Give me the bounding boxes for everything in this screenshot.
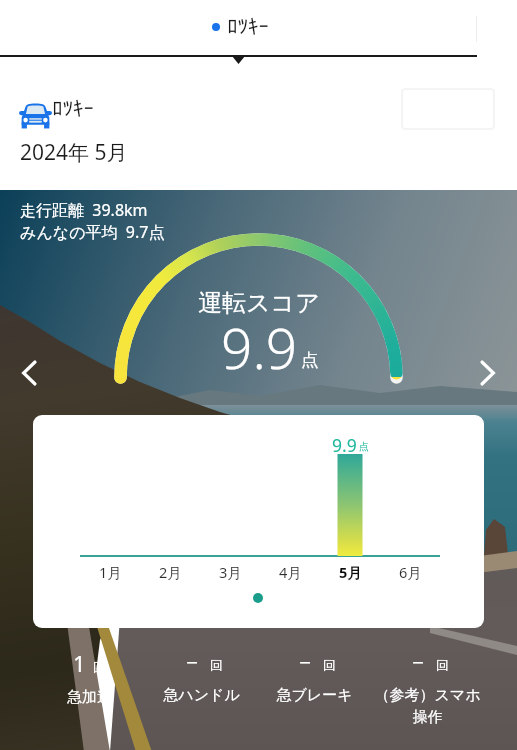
staticText: 9.9: [221, 310, 298, 385]
staticText: 6月: [399, 562, 422, 582]
staticText: －: [407, 648, 429, 676]
button[interactable]: Vehicle image: [401, 88, 495, 130]
staticText: 1: [73, 648, 86, 678]
button[interactable]: －: [145, 648, 258, 705]
button[interactable]: 1: [33, 648, 145, 707]
staticText: 2月: [159, 562, 182, 582]
staticText: 点: [359, 440, 369, 453]
staticText: 点: [301, 349, 319, 371]
staticText: （参考）スマホ操作: [371, 686, 484, 726]
button[interactable]: Next month: [471, 356, 505, 390]
staticText: 5月: [339, 562, 362, 582]
staticText: 4月: [279, 562, 302, 582]
staticText: ﾛﾂｷｰ: [227, 16, 269, 37]
button[interactable]: －: [371, 648, 484, 726]
staticText: 回: [323, 657, 336, 673]
button[interactable]: ﾛﾂｷｰ: [212, 16, 269, 37]
staticText: 急加速: [67, 688, 112, 707]
staticText: 回: [210, 657, 223, 673]
staticText: ﾛﾂｷｰ: [52, 98, 94, 119]
staticText: －: [294, 648, 316, 676]
button[interactable]: －: [258, 648, 371, 705]
staticText: －: [181, 648, 203, 676]
staticText: 2024年 5月: [20, 138, 128, 167]
staticText: 1月: [99, 562, 122, 582]
staticText: 3月: [219, 562, 242, 582]
staticText: 9.9: [332, 433, 357, 457]
button[interactable]: Previous month: [12, 356, 46, 390]
staticText: 回: [436, 657, 449, 673]
staticText: 回: [93, 659, 106, 675]
staticText: 走行距離 39.8km: [20, 199, 148, 221]
staticText: みんなの平均 9.7点: [20, 221, 165, 243]
staticText: 運転スコア: [198, 288, 320, 318]
staticText: 急ハンドル: [163, 686, 240, 705]
staticText: 急ブレーキ: [276, 686, 353, 705]
